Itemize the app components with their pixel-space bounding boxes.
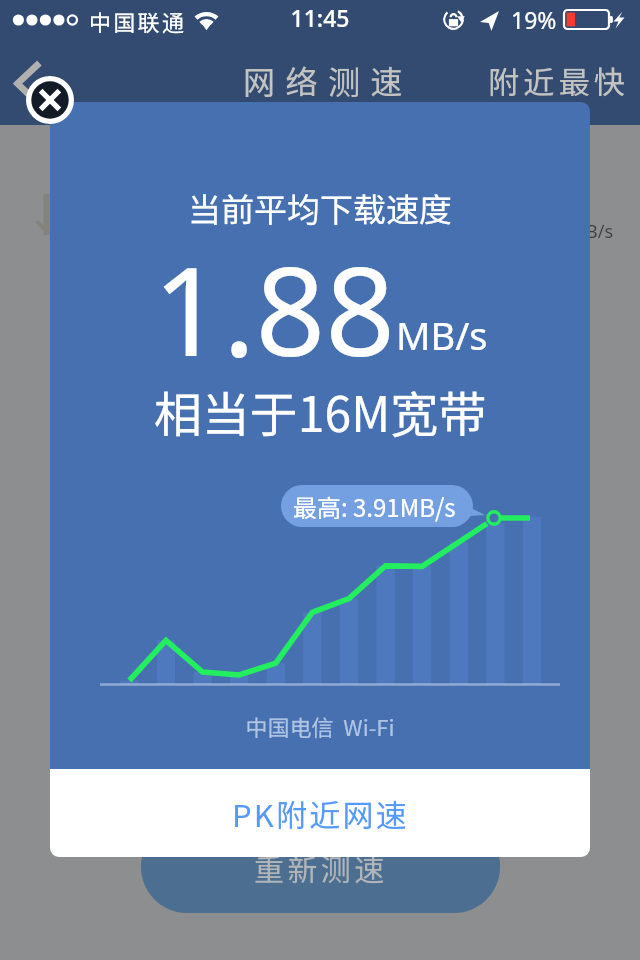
staticText: 最高: 3.91MB/s	[293, 489, 456, 524]
button[interactable]: 附近最快	[488, 58, 630, 103]
button[interactable]: Close	[26, 76, 74, 124]
staticText: 重新测速	[254, 846, 388, 889]
other: Back	[14, 59, 44, 103]
staticText: 相当于16M宽带	[50, 376, 590, 446]
button[interactable]: 重新测速	[141, 820, 500, 913]
staticText: 中国电信 Wi-Fi	[50, 710, 590, 742]
button[interactable]: PK附近网速	[50, 769, 590, 857]
staticText: 中国联通	[89, 5, 187, 37]
staticText: 当前平均下载速度	[50, 184, 590, 232]
staticText: MB/s	[396, 309, 488, 361]
staticText: 网络测速	[243, 57, 414, 103]
staticText: 19%	[511, 4, 557, 35]
staticText: PK附近网速	[232, 791, 409, 836]
staticText: 1.88	[153, 226, 396, 392]
staticText: B/s	[586, 219, 614, 244]
staticText: 11:45	[0, 2, 640, 33]
